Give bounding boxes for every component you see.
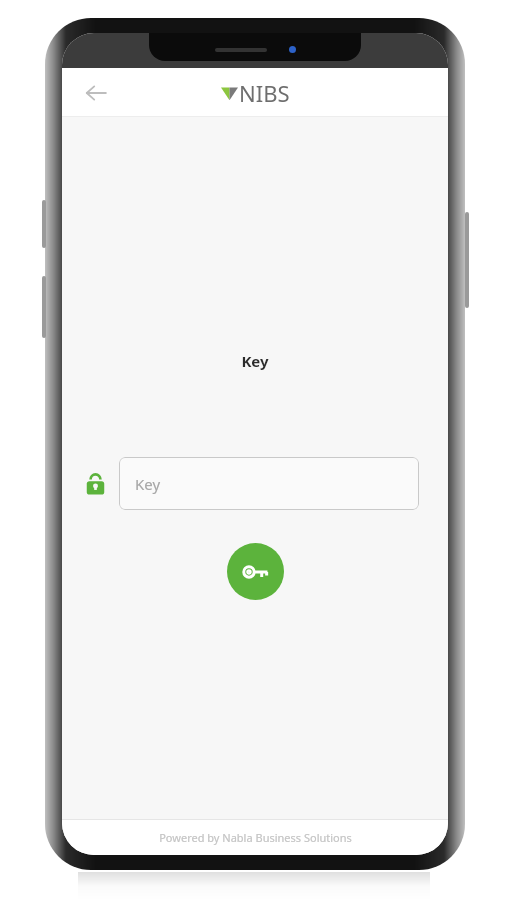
button[interactable]: Key <box>119 457 419 510</box>
button[interactable]: Submit key <box>227 543 284 600</box>
staticText: Key <box>241 351 269 371</box>
staticText: NIBS <box>239 78 290 108</box>
button[interactable]: Back <box>74 71 118 115</box>
staticText: Key <box>135 474 161 494</box>
staticText: Powered by Nabla Business Solutions <box>159 830 352 845</box>
